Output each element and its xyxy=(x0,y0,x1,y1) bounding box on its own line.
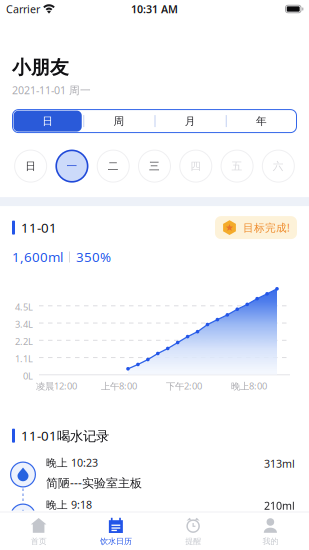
staticText: 二 xyxy=(108,159,119,173)
staticText: 11-01 xyxy=(21,219,57,236)
staticText: 首页 xyxy=(31,536,47,546)
button[interactable]: 一 xyxy=(51,146,93,186)
button[interactable]: 晚上 9:18 xyxy=(0,496,309,538)
button[interactable]: 首页 xyxy=(0,513,77,550)
staticText: 350% xyxy=(76,248,111,266)
staticText: 一 xyxy=(66,159,77,173)
button[interactable]: 饮水日历 xyxy=(77,513,154,550)
staticText: 月 xyxy=(185,114,196,128)
staticText: 11-01喝水记录 xyxy=(21,427,109,444)
button[interactable]: 月 xyxy=(154,109,226,133)
staticText: 周 xyxy=(113,114,124,128)
button[interactable]: 日 xyxy=(12,109,83,133)
staticText: 我的 xyxy=(262,536,278,546)
staticText: 简陋---实验室主板 xyxy=(46,517,142,533)
staticText: 10:31 AM xyxy=(131,2,178,16)
staticText: 210ml xyxy=(264,498,295,513)
staticText: 年 xyxy=(256,114,267,128)
staticText: 3.4L xyxy=(15,318,33,330)
staticText: 晚上 10:23 xyxy=(46,455,98,470)
button[interactable]: 二 xyxy=(93,146,134,186)
staticText: 小朋友 xyxy=(12,56,69,79)
button[interactable]: 目标完成! xyxy=(215,216,297,239)
button[interactable]: 五 xyxy=(216,146,258,186)
button[interactable]: 四 xyxy=(175,146,216,186)
staticText: 目标完成! xyxy=(243,220,290,235)
staticText: 上午8:00 xyxy=(101,380,137,392)
staticText: 下午2:00 xyxy=(166,380,202,392)
staticText: 四 xyxy=(190,159,201,173)
staticText: 简陋---实验室主板 xyxy=(46,475,142,491)
staticText: 饮水日历 xyxy=(100,536,132,546)
staticText: 313ml xyxy=(264,456,295,471)
staticText: 五 xyxy=(232,159,243,173)
staticText: 晚上 9:18 xyxy=(46,497,92,512)
button[interactable]: 晚上 10:23 xyxy=(0,454,309,496)
staticText: 4.5L xyxy=(15,301,33,313)
staticText: 2.2L xyxy=(15,335,33,348)
button[interactable]: 日 xyxy=(10,146,51,186)
staticText: 日 xyxy=(42,114,53,128)
button[interactable]: 周 xyxy=(83,109,154,133)
button[interactable]: 我的 xyxy=(232,513,309,550)
staticText: 六 xyxy=(273,159,284,173)
staticText: 日 xyxy=(25,159,36,173)
staticText: 晚上8:00 xyxy=(231,380,267,392)
staticText: Carrier xyxy=(6,2,40,16)
staticText: 凌晨12:00 xyxy=(36,380,77,392)
staticText: 0L xyxy=(23,370,33,382)
staticText: 1.1L xyxy=(15,353,33,365)
button[interactable]: 提醒 xyxy=(154,513,232,550)
staticText: 1,600ml xyxy=(12,248,63,266)
staticText: 2021-11-01 周一 xyxy=(12,83,91,97)
button[interactable]: 年 xyxy=(226,109,297,133)
button[interactable]: 六 xyxy=(258,146,299,186)
staticText: 三 xyxy=(149,159,160,173)
staticText: 提醒 xyxy=(185,536,201,546)
button[interactable]: 三 xyxy=(134,146,175,186)
